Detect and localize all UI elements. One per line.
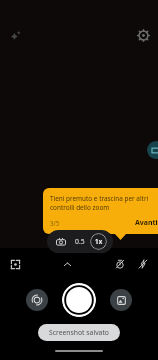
button[interactable]: Tieni premuto e trascina per altri contr… [43,188,158,234]
button[interactable]: Timer off [110,254,130,274]
button[interactable]: Take photo [62,283,96,317]
staticText: 0.5 [75,237,85,246]
staticText: 3/5 [50,219,60,227]
button[interactable]: AI suggestions [5,25,25,45]
button[interactable]: Switch camera [26,289,48,311]
button[interactable]: More options [57,254,77,274]
button[interactable]: Settings [133,25,153,45]
button[interactable]: Scan document [147,141,158,159]
staticText: Avanti [135,218,158,228]
staticText: 1x [95,237,103,246]
button[interactable]: Aspect ratio [5,254,25,274]
button[interactable]: 0.5 [73,235,87,248]
button[interactable]: Gallery [110,289,132,311]
button[interactable]: Flash off [133,254,153,274]
staticText: Screenshot salvato [49,328,109,337]
button[interactable]: Lens [53,234,68,249]
button[interactable]: Avanti [133,217,158,229]
staticText: Tieni premuto e trascina per altri contr… [50,194,158,212]
button[interactable]: 1x [90,233,107,250]
